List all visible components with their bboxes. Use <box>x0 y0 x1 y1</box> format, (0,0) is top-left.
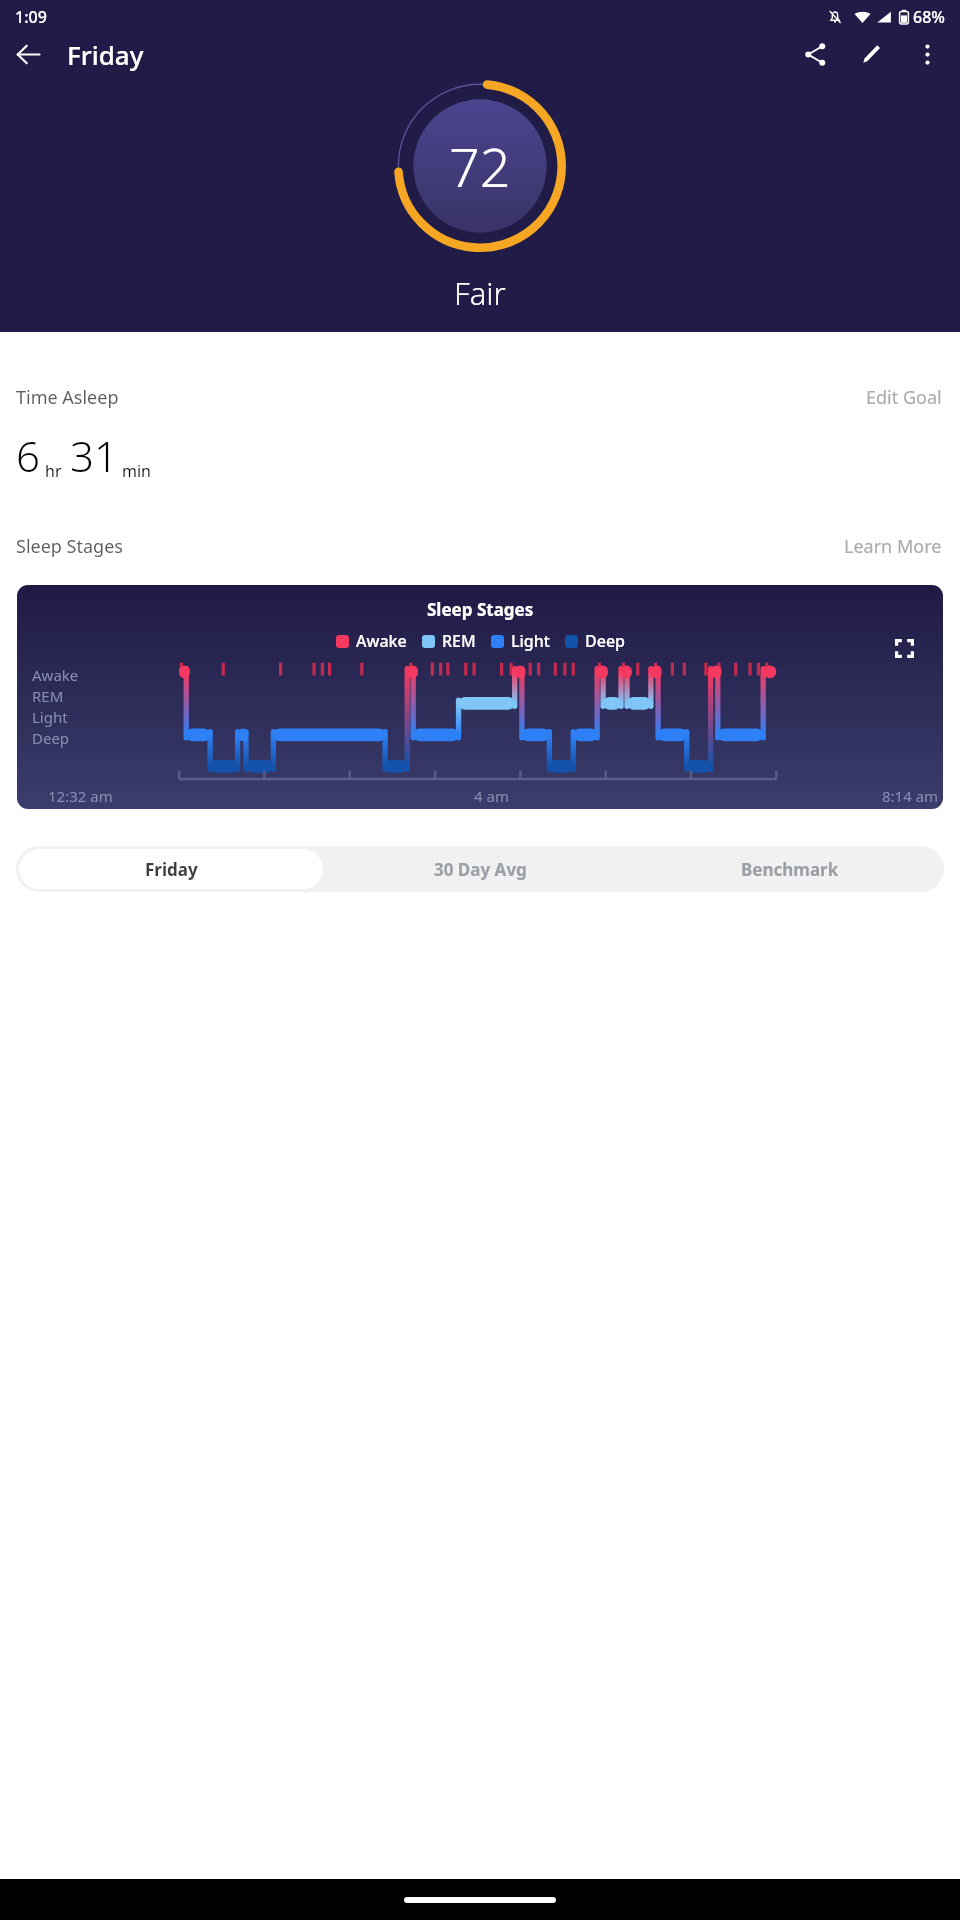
staticText: REM <box>442 630 476 652</box>
staticText: Light <box>32 707 68 727</box>
button[interactable]: Share <box>787 26 843 82</box>
staticText: 1:09 <box>15 6 47 28</box>
staticText: Deep <box>32 728 70 748</box>
staticText: 31 <box>70 427 118 484</box>
staticText: Benchmark <box>741 858 839 881</box>
button[interactable]: 30 Day Avg <box>326 846 635 892</box>
staticText: Edit Goal <box>866 385 942 410</box>
staticText: REM <box>32 686 64 706</box>
staticText: 12:32 am <box>48 786 113 806</box>
staticText: Time Asleep <box>16 385 119 410</box>
staticText: Deep <box>585 630 625 652</box>
button[interactable]: Sleep Stages <box>17 585 943 809</box>
button[interactable]: Edit Goal <box>864 379 944 416</box>
staticText: 30 Day Avg <box>434 858 527 881</box>
button[interactable]: Learn More <box>842 528 944 565</box>
staticText: 68% <box>913 6 945 28</box>
staticText: 6 <box>16 427 40 484</box>
button[interactable]: Edit <box>843 26 899 82</box>
staticText: min <box>122 460 151 482</box>
button[interactable]: More options <box>899 26 955 82</box>
staticText: hr <box>45 460 62 482</box>
staticText: Light <box>511 630 550 652</box>
button[interactable]: Expand chart <box>887 631 921 665</box>
staticText: Sleep Stages <box>427 598 534 621</box>
staticText: 8:14 am <box>882 786 939 806</box>
staticText: Friday <box>145 858 198 881</box>
staticText: Learn More <box>844 534 942 559</box>
staticText: Awake <box>32 665 79 685</box>
staticText: Fair <box>454 272 506 314</box>
staticText: Friday <box>67 37 144 72</box>
staticText: 72 <box>449 129 511 203</box>
button[interactable]: Back <box>0 26 56 82</box>
button[interactable]: Friday <box>19 849 323 889</box>
button[interactable]: Benchmark <box>635 846 944 892</box>
staticText: Sleep Stages <box>16 534 123 559</box>
staticText: 4 am <box>474 786 509 806</box>
staticText: Awake <box>356 630 407 652</box>
